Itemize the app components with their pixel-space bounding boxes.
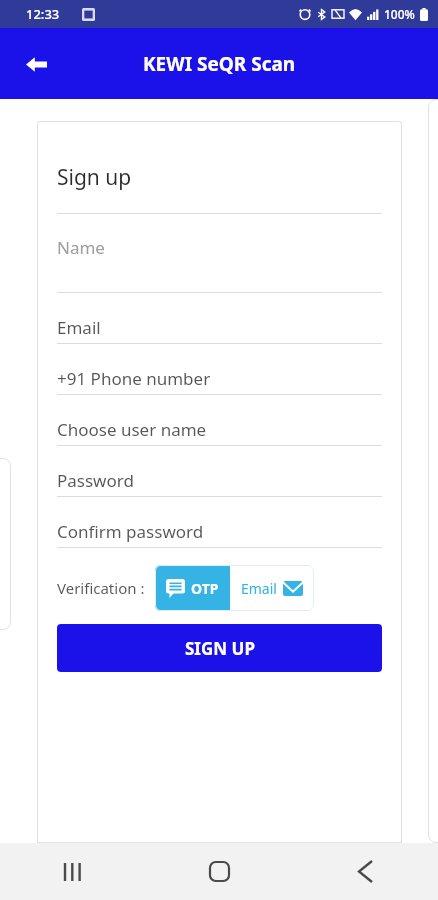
staticText: Sign up [57,163,132,192]
button[interactable]: Password [57,469,382,497]
button[interactable]: Recent apps [0,843,146,900]
staticText: KEWI SeQR Scan [143,51,296,77]
button[interactable]: Confirm password [57,520,382,548]
staticText: Name [57,236,105,259]
button[interactable]: OTP [166,565,219,611]
button[interactable]: Email [241,565,303,611]
staticText: 100% [384,6,415,22]
button[interactable]: Home [146,843,292,900]
staticText: 12:33 [26,5,60,23]
staticText: Email [57,316,101,339]
staticText: +91 Phone number [57,367,211,390]
button[interactable]: Back [16,44,56,84]
button[interactable]: Name [57,236,382,293]
staticText: Password [57,469,134,492]
staticText: OTP [191,579,219,598]
button[interactable]: Back [292,843,438,900]
staticText: SIGN UP [185,637,255,660]
button[interactable]: SIGN UP [57,624,382,672]
staticText: Verification : [57,578,145,598]
staticText: Email [241,579,277,598]
staticText: Choose user name [57,418,207,441]
button[interactable]: +91 Phone number [57,367,382,395]
button[interactable]: Choose user name [57,418,382,446]
staticText: Confirm password [57,520,204,543]
button[interactable]: Email [57,316,382,344]
